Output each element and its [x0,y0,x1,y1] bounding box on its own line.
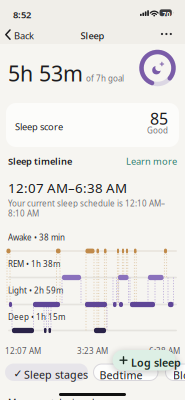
staticText: 3:23 AM [77,345,108,356]
staticText: 12:07 AM [5,345,41,356]
staticText: of 7h goal [86,73,124,84]
staticText: 6:38 AM [149,345,180,356]
button[interactable]: More options [157,25,185,400]
staticText: Log sleep [131,355,181,370]
staticText: Deep • 1h 15m [8,311,65,322]
staticText: Movement during sleep [8,396,110,400]
staticText: 8:10 AM [8,208,39,219]
button[interactable]: Log sleep [112,350,177,368]
staticText: 12:07 AM–6:38 AM [8,179,127,197]
staticText: Sleep [80,29,104,42]
staticText: Learn more [126,155,177,167]
staticText: Light • 2h 59m [8,285,63,296]
staticText: 85 [150,108,168,129]
staticText: Blood ox [173,368,185,382]
staticText: Good [147,125,168,136]
staticText: 8:52 [13,8,31,21]
button[interactable]: Blood ox [165,363,185,381]
staticText: 5h 53m [8,59,83,87]
staticText: Awake • 38 min [8,232,65,243]
staticText: 70 [162,10,170,19]
staticText: Your current sleep schedule is 12:10 AM– [8,198,165,209]
button[interactable]: Bedtime [93,363,158,381]
button[interactable]: Learn more [126,155,177,167]
button[interactable]: ✓ [5,363,88,381]
staticText: Sleep stages [24,367,88,382]
staticText: REM • 1h 38m [8,258,60,269]
button[interactable]: Back [0,25,185,400]
staticText: Sleep timeline [8,155,72,167]
staticText: ✓ [13,367,22,380]
staticText: Sleep score [15,120,63,133]
button[interactable]: Sleep score [6,103,179,147]
staticText: Back [14,29,34,42]
staticText: Bedtime [99,368,142,382]
